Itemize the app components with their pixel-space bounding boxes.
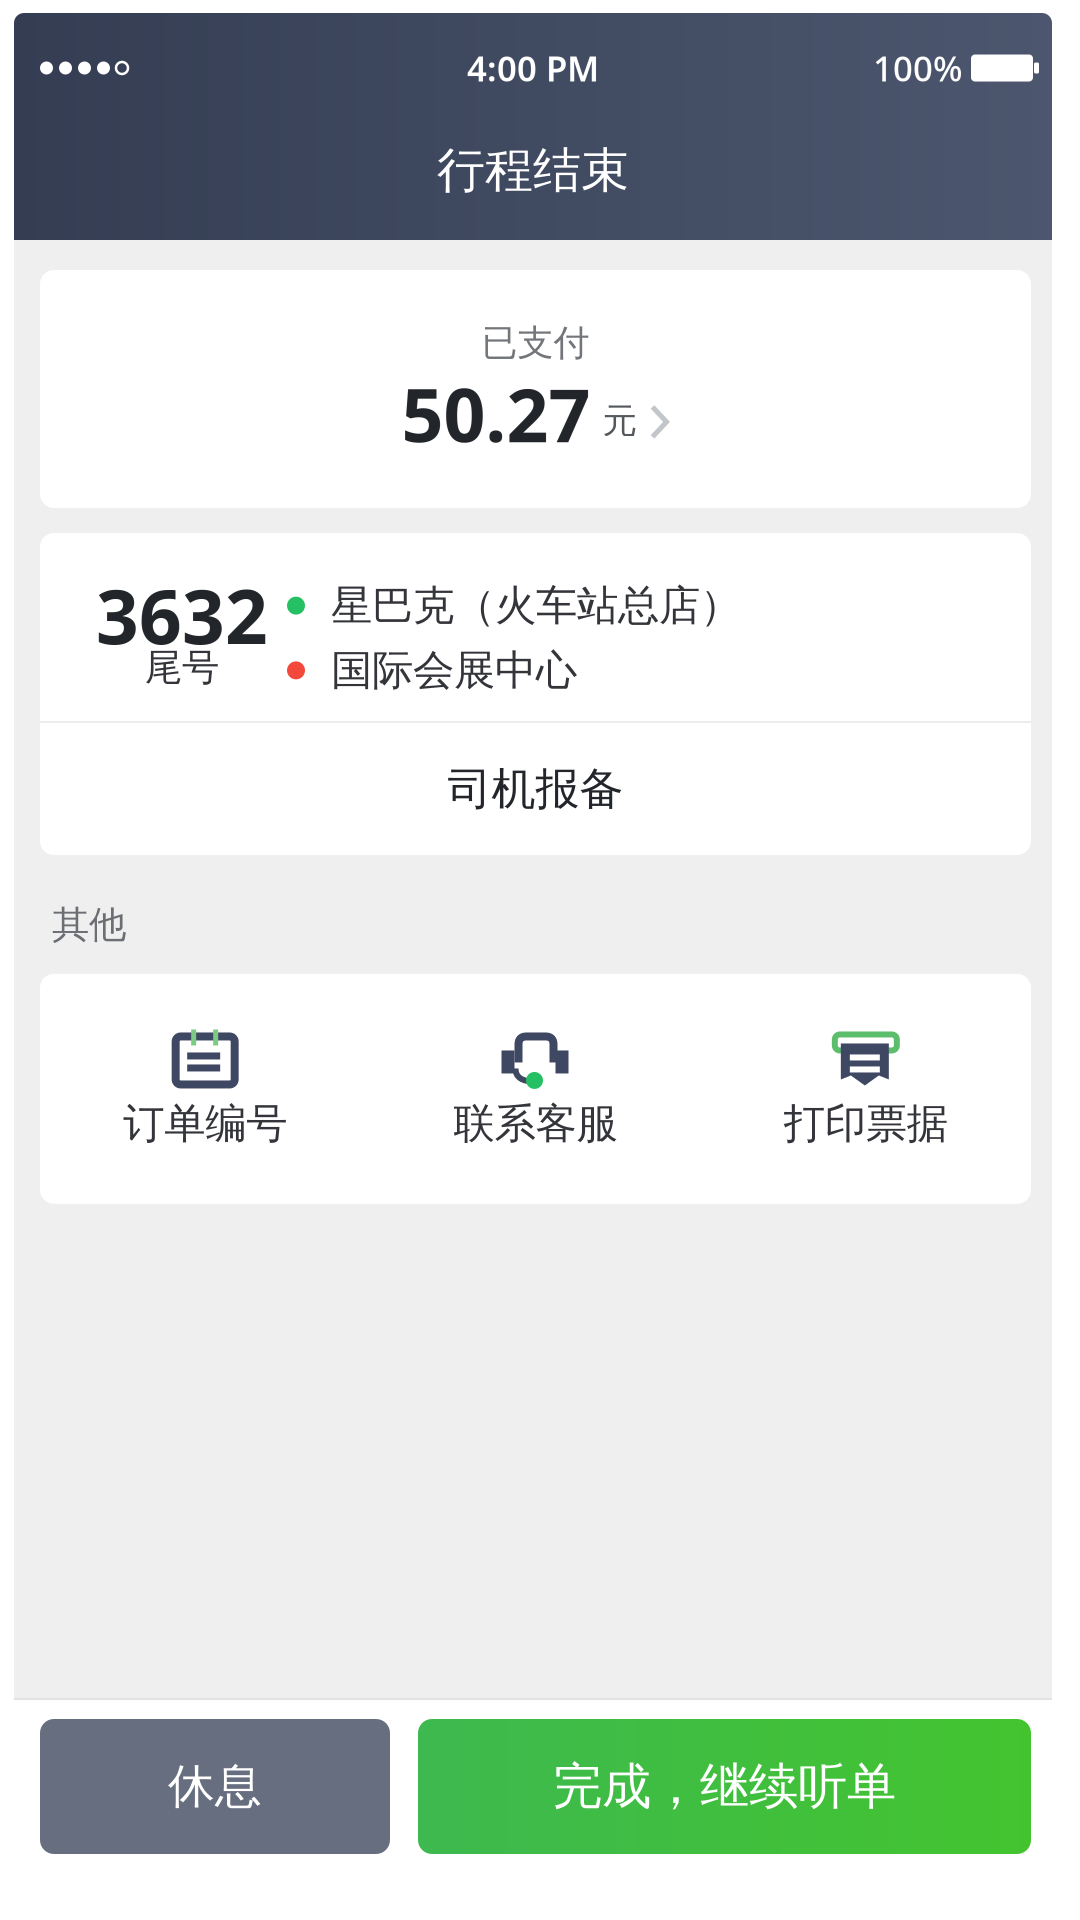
staticText: 元 — [602, 400, 637, 442]
staticText: 星巴克（火车站总店） — [331, 580, 741, 631]
staticText: 完成，继续听单 — [553, 1756, 896, 1817]
button[interactable]: 司机报备 — [40, 723, 1031, 855]
staticText: 休息 — [168, 1758, 262, 1815]
staticText: 100% — [873, 45, 963, 91]
staticText: 3632 — [96, 565, 268, 665]
staticText: 司机报备 — [447, 762, 623, 816]
staticText: 其他 — [52, 902, 126, 948]
button[interactable]: 完成，继续听单 — [418, 1719, 1031, 1854]
button[interactable]: 打印票据 — [701, 1028, 1031, 1149]
staticText: 行程结束 — [437, 141, 629, 200]
button[interactable]: 联系客服 — [370, 1028, 701, 1149]
button[interactable]: 订单编号 — [40, 1028, 370, 1149]
staticText: 联系客服 — [453, 1098, 617, 1149]
staticText: 订单编号 — [123, 1098, 287, 1149]
staticText: 已支付 — [481, 321, 589, 365]
staticText: 打印票据 — [784, 1098, 948, 1149]
staticText: 尾号 — [145, 645, 219, 690]
staticText: 国际会展中心 — [331, 645, 577, 696]
staticText: 4:00 PM — [467, 45, 599, 91]
button[interactable]: 已支付 — [40, 270, 1031, 508]
staticText: 50.27 — [401, 365, 590, 463]
button[interactable]: 休息 — [40, 1719, 390, 1854]
